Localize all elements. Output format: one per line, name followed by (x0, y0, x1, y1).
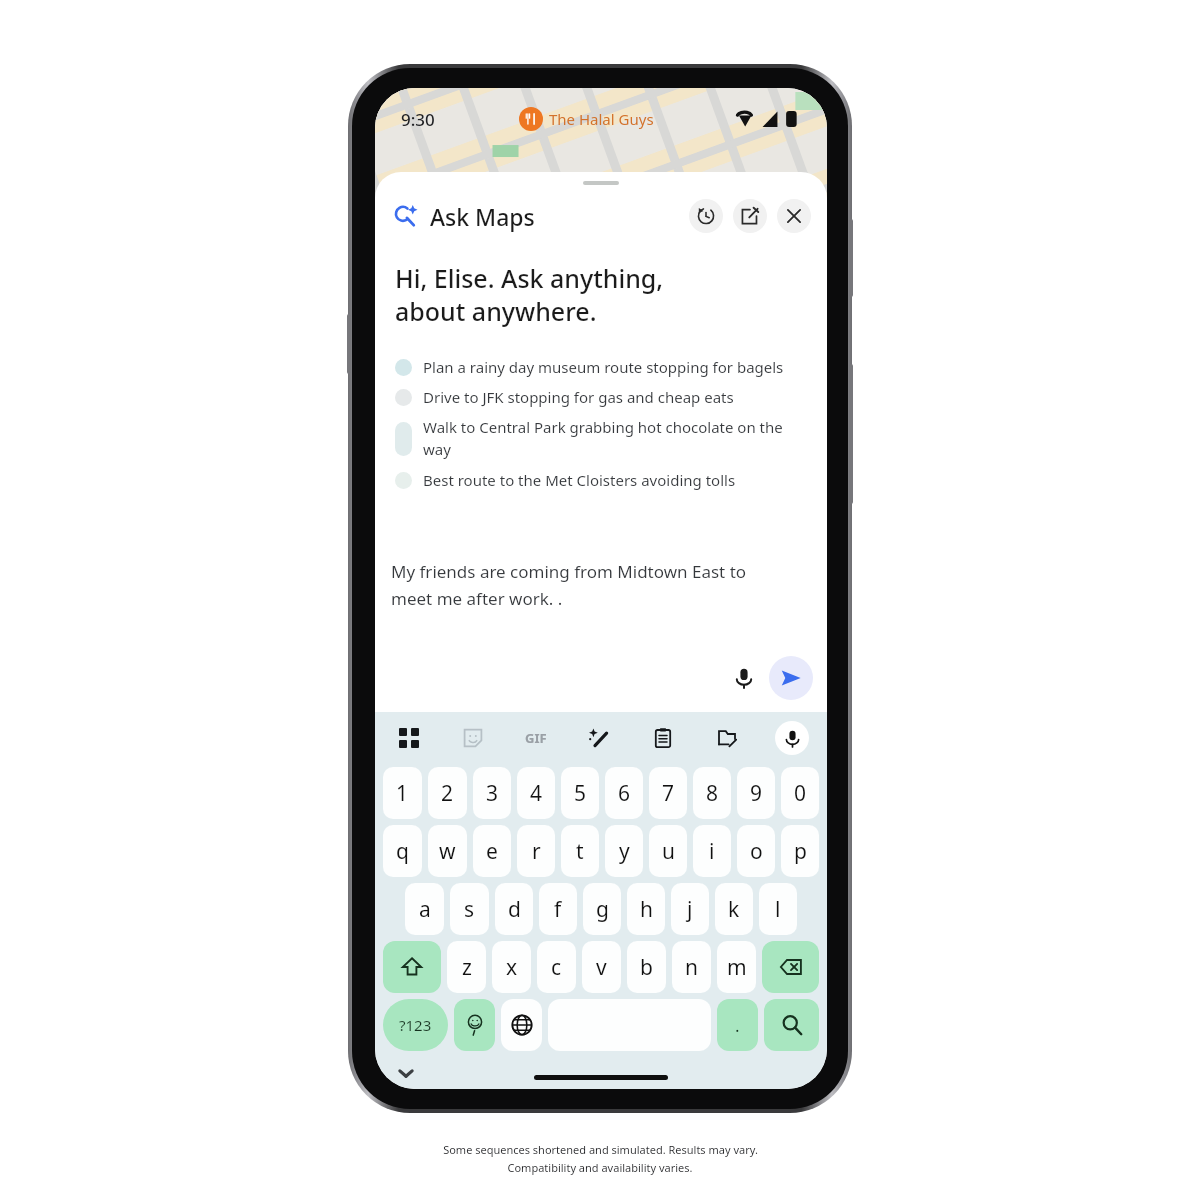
staticText: p (794, 837, 807, 866)
button[interactable]: Shift (383, 941, 441, 993)
button[interactable]: j (671, 883, 709, 935)
button[interactable]: 7 (649, 767, 687, 819)
staticText: j (687, 895, 693, 924)
button[interactable]: New chat (733, 199, 767, 233)
staticText: x (506, 953, 518, 982)
button[interactable]: Search (764, 999, 819, 1051)
staticText: i (709, 837, 715, 866)
button[interactable]: History (689, 199, 723, 233)
staticText: GIF (525, 729, 547, 747)
staticText: 7 (662, 779, 675, 808)
button[interactable]: Language (501, 999, 542, 1051)
button[interactable]: 1 (383, 767, 422, 819)
staticText: w (439, 837, 456, 866)
staticText: The Halal Guys (549, 109, 654, 129)
button[interactable]: i (693, 825, 731, 877)
button[interactable]: 9 (737, 767, 775, 819)
button[interactable]: Plan a rainy day museum route stopping f… (375, 352, 827, 382)
button[interactable]: g (583, 883, 621, 935)
staticText: f (554, 895, 562, 924)
button[interactable]: Send (769, 656, 813, 700)
staticText: q (396, 837, 409, 866)
button[interactable]: a (405, 883, 444, 935)
button[interactable]: 4 (517, 767, 555, 819)
button[interactable]: v (582, 941, 621, 993)
button[interactable]: Close (777, 199, 811, 233)
button[interactable]: z (447, 941, 486, 993)
button[interactable]: Apps (393, 722, 425, 754)
staticText: g (596, 895, 609, 924)
button[interactable]: y (605, 825, 643, 877)
button[interactable]: l (759, 883, 797, 935)
button[interactable]: q (383, 825, 422, 877)
button[interactable]: k (715, 883, 753, 935)
staticText: z (462, 953, 472, 982)
button[interactable]: x (492, 941, 531, 993)
button[interactable]: . (717, 999, 758, 1051)
button[interactable]: Voice typing (775, 721, 809, 755)
staticText: 3 (486, 779, 499, 808)
button[interactable]: Magic edit (583, 722, 615, 754)
staticText: Compatibility and availability varies. (507, 1160, 693, 1175)
staticText: 9:30 (401, 108, 435, 131)
staticText: 5 (574, 779, 587, 808)
staticText: 1 (396, 779, 409, 808)
button[interactable]: 2 (428, 767, 467, 819)
staticText: h (640, 895, 653, 924)
button[interactable]: m (717, 941, 756, 993)
button[interactable]: r (517, 825, 555, 877)
button[interactable]: w (428, 825, 467, 877)
staticText: d (508, 895, 521, 924)
button[interactable]: Stickers (457, 722, 489, 754)
button[interactable]: n (672, 941, 711, 993)
button[interactable]: e (473, 825, 511, 877)
button[interactable]: f (539, 883, 577, 935)
staticText: a (419, 895, 431, 924)
button[interactable]: c (537, 941, 576, 993)
staticText: 8 (706, 779, 719, 808)
button[interactable]: Best route to the Met Cloisters avoiding… (375, 465, 827, 495)
staticText: ?123 (399, 1015, 432, 1035)
staticText: r (532, 837, 541, 866)
staticText: t (576, 837, 584, 866)
button[interactable]: Emoji (454, 999, 495, 1051)
button[interactable]: Files (711, 722, 743, 754)
staticText: Some sequences shortened and simulated. … (443, 1142, 758, 1157)
button[interactable]: 8 (693, 767, 731, 819)
staticText: 6 (618, 779, 631, 808)
staticText: Best route to the Met Cloisters avoiding… (423, 470, 736, 490)
button[interactable]: 6 (605, 767, 643, 819)
button[interactable]: p (781, 825, 819, 877)
staticText: l (775, 895, 781, 924)
button[interactable]: Drive to JFK stopping for gas and cheap … (375, 382, 827, 412)
staticText: k (728, 895, 740, 924)
button[interactable]: Voice input (723, 657, 765, 699)
button[interactable]: 3 (473, 767, 511, 819)
staticText: n (685, 953, 698, 982)
button[interactable]: Backspace (762, 941, 819, 993)
staticText: m (727, 953, 747, 982)
button[interactable]: t (561, 825, 599, 877)
staticText: e (486, 837, 498, 866)
staticText: 2 (441, 779, 454, 808)
staticText: y (619, 837, 630, 866)
button[interactable]: b (627, 941, 666, 993)
button[interactable]: d (495, 883, 533, 935)
staticText: Ask Maps (430, 201, 535, 232)
button[interactable]: Space (548, 999, 711, 1051)
button[interactable]: s (450, 883, 489, 935)
button[interactable]: h (627, 883, 665, 935)
button[interactable]: u (649, 825, 687, 877)
button[interactable]: Walk to Central Park grabbing hot chocol… (375, 412, 827, 465)
button[interactable]: o (737, 825, 775, 877)
staticText: 9 (750, 779, 763, 808)
button[interactable]: GIF (521, 723, 551, 753)
button[interactable]: Clipboard (647, 722, 679, 754)
staticText: Walk to Central Park grabbing hot chocol… (423, 417, 783, 460)
button[interactable]: ?123 (383, 999, 448, 1051)
button[interactable]: 5 (561, 767, 599, 819)
staticText: . (735, 1014, 740, 1037)
button[interactable]: 0 (781, 767, 819, 819)
staticText: u (662, 837, 675, 866)
staticText: Hi, Elise. Ask anything, about anywhere. (395, 261, 664, 328)
